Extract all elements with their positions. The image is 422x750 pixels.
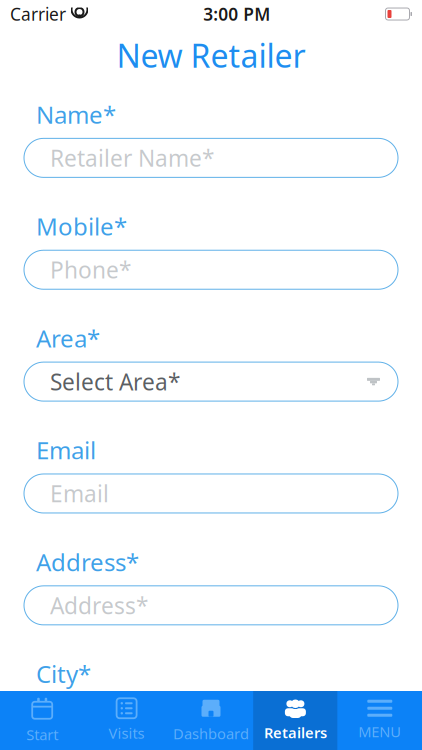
staticText: Start: [26, 725, 58, 744]
button[interactable]: MENU: [338, 691, 422, 750]
staticText: Select Area*: [50, 367, 180, 397]
button[interactable]: Select Area*: [24, 362, 398, 401]
staticText: Retailers: [264, 723, 327, 742]
button[interactable]: Retailers: [253, 691, 338, 750]
staticText: Dashboard: [173, 724, 249, 743]
staticText: City*: [50, 702, 102, 732]
staticText: MENU: [358, 722, 401, 741]
button[interactable]: Email: [24, 474, 398, 513]
button[interactable]: Address*: [24, 586, 398, 625]
staticText: Visits: [109, 723, 145, 743]
staticText: 3:00 PM: [203, 2, 270, 25]
button[interactable]: Retailer Name*: [24, 138, 398, 177]
staticText: Email: [36, 434, 96, 466]
staticText: Area*: [36, 322, 100, 354]
button[interactable]: Start: [0, 691, 84, 750]
staticText: Name*: [36, 98, 116, 130]
staticText: New Retailer: [116, 34, 305, 76]
staticText: Address*: [50, 590, 148, 620]
staticText: Mobile*: [36, 210, 127, 242]
staticText: City*: [36, 658, 91, 690]
button[interactable]: City*: [24, 698, 398, 737]
button[interactable]: Phone*: [24, 250, 398, 289]
staticText: Carrier: [10, 2, 66, 25]
staticText: Retailer Name*: [50, 143, 214, 173]
staticText: Phone*: [50, 255, 131, 285]
button[interactable]: Visits: [84, 691, 169, 750]
button[interactable]: Dashboard: [169, 691, 253, 750]
staticText: Address*: [36, 546, 139, 578]
staticText: Email: [50, 478, 109, 508]
